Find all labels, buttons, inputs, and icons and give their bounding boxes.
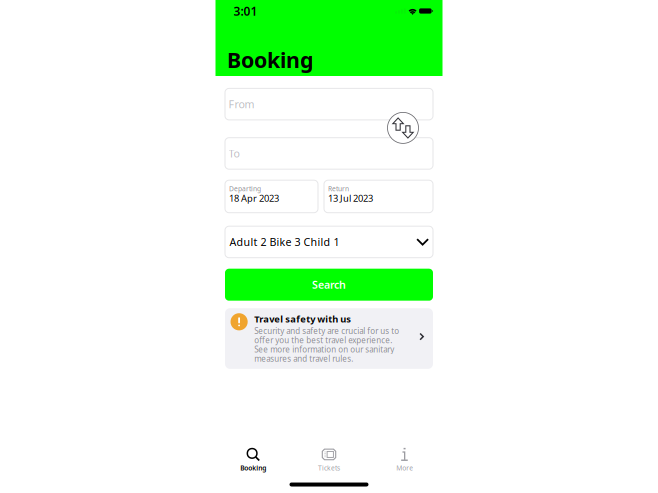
staticText: 13 Jul 2023 <box>328 192 373 204</box>
staticText: 18 Apr 2023 <box>229 192 279 204</box>
button[interactable]: From <box>225 88 433 120</box>
button[interactable]: To <box>225 138 433 169</box>
staticText: More <box>396 464 413 472</box>
staticText: Security and safety are crucial for us t… <box>254 326 399 364</box>
staticText: Booking <box>240 464 266 472</box>
staticText: Booking <box>227 46 313 74</box>
staticText: Return <box>328 184 349 193</box>
staticText: Adult 2 Bike 3 Child 1 <box>229 235 339 249</box>
button[interactable]: Adult 2 Bike 3 Child 1 <box>225 226 433 258</box>
button[interactable]: Tickets <box>291 444 367 476</box>
button[interactable]: Return <box>324 180 433 213</box>
staticText: Travel safety with us <box>254 313 351 325</box>
staticText: Tickets <box>318 464 340 472</box>
button[interactable]: Departing <box>225 180 318 213</box>
button[interactable]: Travel safety with us <box>225 308 433 369</box>
button[interactable]: More <box>367 444 442 476</box>
staticText: Search <box>312 278 346 292</box>
staticText: To <box>228 146 239 161</box>
button[interactable]: Search <box>225 269 433 301</box>
staticText: From <box>228 97 254 111</box>
button[interactable]: Swap origin and destination <box>387 112 418 143</box>
staticText: Departing <box>229 184 261 193</box>
button[interactable]: Booking <box>215 444 291 476</box>
staticText: 3:01 <box>233 3 257 19</box>
